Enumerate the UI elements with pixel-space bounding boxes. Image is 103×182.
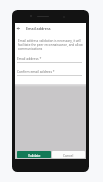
button[interactable]: Cancel bbox=[52, 151, 85, 158]
staticText: Email address validation is necessary, i… bbox=[18, 39, 83, 51]
button[interactable]: Back bbox=[15, 24, 22, 33]
staticText: Cancel bbox=[63, 153, 74, 157]
button[interactable]: Validate bbox=[17, 151, 51, 158]
staticText: Validate bbox=[28, 153, 41, 157]
staticText: Email address bbox=[26, 26, 51, 31]
staticText: Confirm email address * bbox=[17, 69, 55, 73]
staticText: Email address * bbox=[17, 56, 42, 60]
